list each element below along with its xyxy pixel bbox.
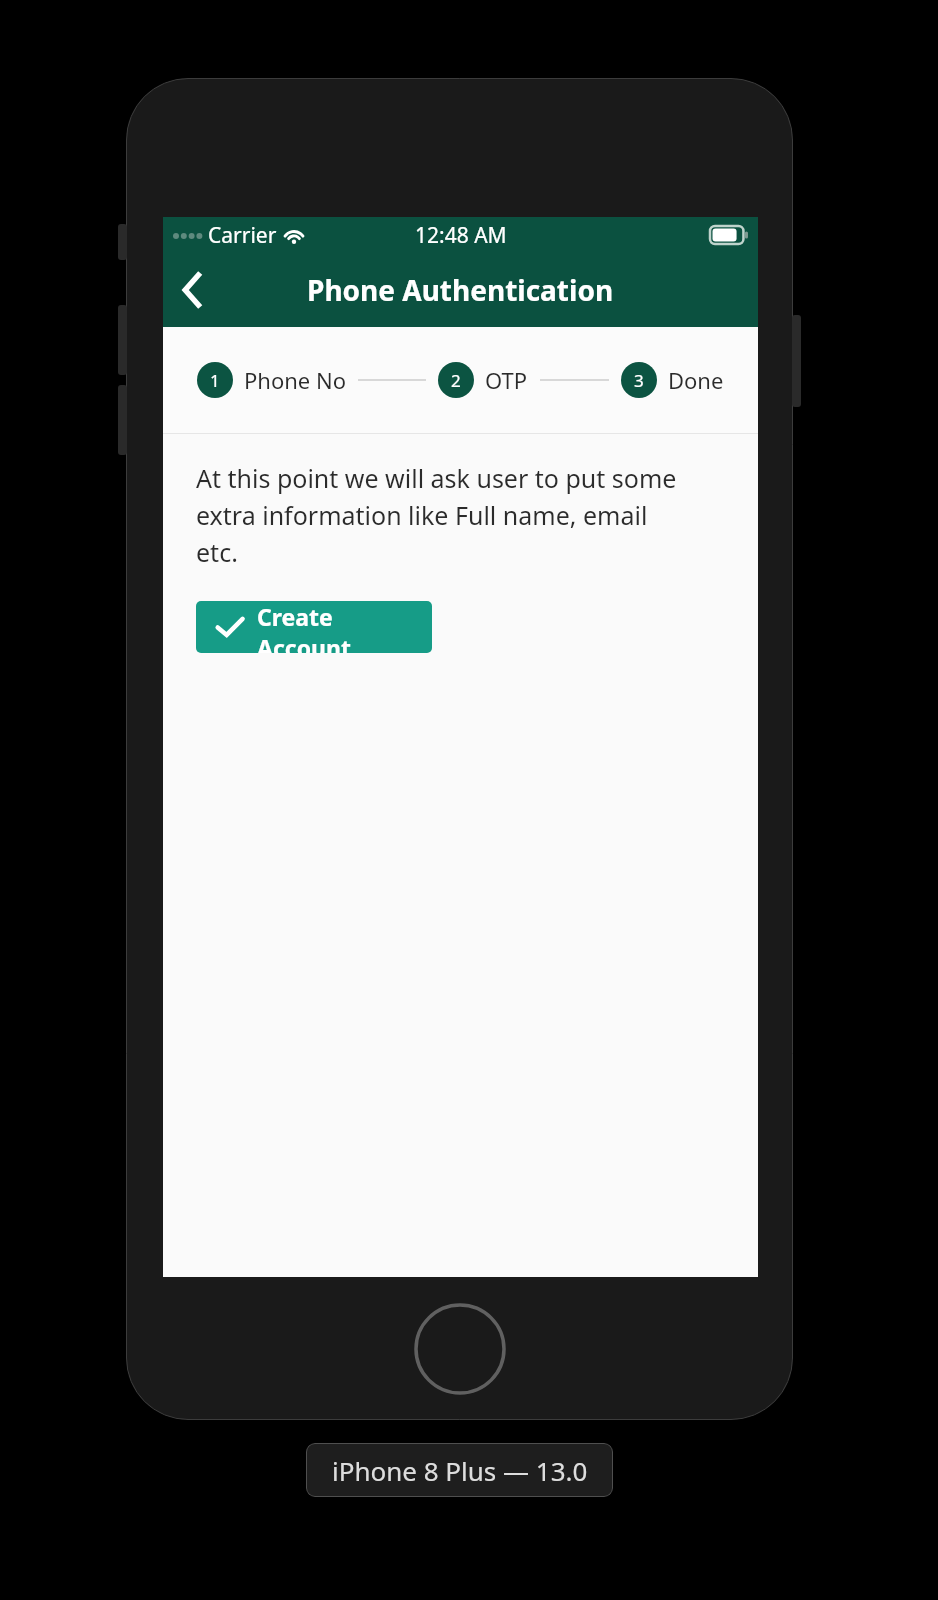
button[interactable]: 2 [438,362,474,398]
button[interactable]: 1 [197,362,233,398]
staticText: Phone No [244,365,346,395]
button[interactable]: Back [163,261,221,319]
staticText: At this point we will ask user to put so… [196,461,693,569]
staticText: 1 [210,369,220,392]
staticText: Create Account [257,601,432,653]
staticText: 12:48 AM [415,221,507,250]
staticText: 2 [451,369,461,392]
staticText: iPhone 8 Plus — 13.0 [332,1453,588,1488]
staticText: Done [668,365,724,395]
staticText: 3 [634,369,644,392]
staticText: Phone Authentication [307,271,614,309]
staticText: Carrier [208,221,277,250]
button[interactable]: Create Account [196,601,432,653]
button[interactable]: 3 [621,362,657,398]
staticText: OTP [485,365,528,395]
